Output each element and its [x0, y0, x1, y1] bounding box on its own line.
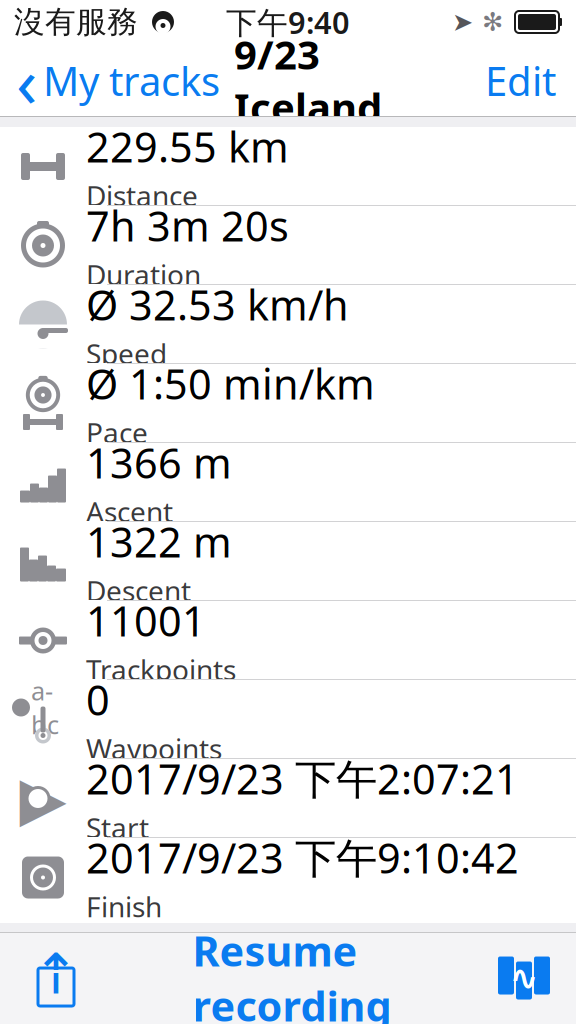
staticText: 1366 m — [86, 435, 232, 490]
staticText: 2017/9/23 下午2:07:21 — [86, 751, 519, 806]
staticText: ↑ — [32, 942, 79, 1006]
button[interactable]: 1366 m — [0, 443, 576, 522]
button[interactable]: 11001 — [0, 601, 576, 680]
staticText: ▶ — [19, 764, 66, 833]
staticText: 0 — [86, 672, 110, 727]
staticText: Speed — [86, 335, 167, 372]
staticText: Trackpoints — [86, 651, 236, 688]
staticText: Ø 32.53 km/h — [86, 277, 349, 332]
staticText: abc — [31, 674, 59, 741]
staticText: Start — [86, 809, 149, 846]
staticText: 11001 — [86, 593, 206, 648]
staticText: 2017/9/23 下午9:10:42 — [86, 830, 519, 885]
staticText: 229.55 km — [86, 119, 289, 174]
staticText: ∿ — [509, 958, 538, 998]
staticText: 1322 m — [86, 514, 232, 569]
staticText: Finish — [86, 888, 162, 925]
button[interactable]: Resume recording — [182, 932, 401, 1024]
button[interactable]: Edit — [469, 50, 572, 110]
staticText: 沒有服務 — [14, 3, 138, 41]
button[interactable]: Share — [14, 932, 98, 1024]
button[interactable]: ▶ — [0, 759, 576, 838]
button[interactable]: 229.55 km — [0, 127, 576, 206]
staticText: Waypoints — [86, 730, 222, 767]
button[interactable]: Ø 32.53 km/h — [0, 285, 576, 364]
button[interactable]: Show map — [486, 932, 562, 1024]
button[interactable]: ‹ — [0, 50, 228, 110]
staticText: Duration — [86, 256, 201, 293]
button[interactable]: abc — [0, 680, 576, 759]
staticText: Ø 1:50 min/km — [86, 356, 375, 411]
staticText: Distance — [86, 177, 198, 214]
staticText: Ascent — [86, 493, 173, 530]
staticText: My tracks — [43, 54, 220, 107]
staticText: ✻ — [482, 8, 503, 36]
button[interactable]: 2017/9/23 下午9:10:42 — [0, 838, 576, 917]
staticText: ➤ — [452, 8, 473, 36]
staticText: Resume recording — [192, 923, 391, 1024]
staticText: 下午9:40 — [226, 2, 350, 42]
staticText: 9/23 Iceland — [234, 27, 382, 134]
staticText: ‹ — [16, 34, 37, 127]
button[interactable]: 7h 3m 20s — [0, 206, 576, 285]
staticText: Descent — [86, 572, 191, 609]
staticText: Edit — [485, 54, 556, 107]
staticText: 7h 3m 20s — [86, 198, 289, 253]
button[interactable]: Ø 1:50 min/km — [0, 364, 576, 443]
button[interactable]: 1322 m — [0, 522, 576, 601]
staticText: Pace — [86, 414, 148, 451]
